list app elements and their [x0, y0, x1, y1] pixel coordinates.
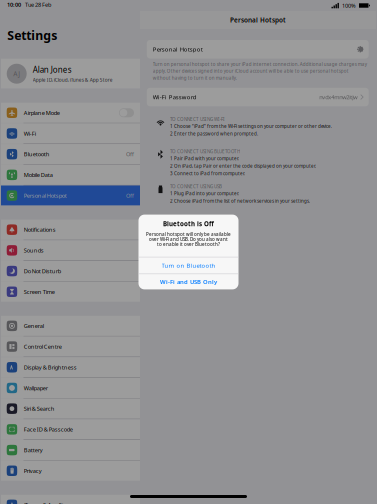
- staticText: 2 Choose iPad from the list of network s…: [170, 198, 310, 204]
- staticText: Wi-Fi: [24, 130, 36, 137]
- button[interactable]: Sounds: [1, 240, 140, 260]
- staticText: Bluetooth: [24, 150, 50, 158]
- staticText: Airplane Mode: [24, 109, 60, 117]
- button[interactable]: Wi-Fi and USB Only: [138, 274, 238, 289]
- button[interactable]: iTunes & App Store: [1, 495, 140, 504]
- staticText: to enable it over Bluetooth?: [157, 241, 220, 247]
- staticText: Mobile Data: [24, 171, 53, 179]
- staticText: Screen Time: [24, 288, 55, 296]
- staticText: Wi-Fi Password: [153, 93, 197, 101]
- staticText: Off: [126, 192, 134, 199]
- staticText: 100%: [342, 2, 356, 9]
- staticText: TO CONNECT USING BLUETOOTH: [170, 148, 240, 154]
- staticText: over Wi-Fi and USB. Do you also want: [149, 236, 228, 242]
- button[interactable]: Personal Hotspot: [1, 185, 140, 206]
- staticText: Settings: [7, 27, 57, 44]
- staticText: Wallpaper: [24, 384, 48, 392]
- button[interactable]: Mobile Data: [1, 165, 140, 185]
- button[interactable]: AJ: [1, 59, 140, 89]
- button[interactable]: Turn on Bluetooth: [138, 257, 238, 274]
- staticText: Do Not Disturb: [24, 267, 61, 275]
- staticText: 1 Choose “iPad” from the Wi-Fi settings …: [170, 123, 332, 129]
- button[interactable]: Face ID & Passcode: [1, 419, 140, 439]
- button[interactable]: Notifications: [1, 220, 140, 240]
- staticText: Privacy: [24, 467, 42, 475]
- button[interactable]: Screen Time: [1, 282, 140, 302]
- staticText: Personal Hotspot: [153, 45, 203, 53]
- button[interactable]: Airplane Mode: [1, 103, 140, 123]
- button[interactable]: Wallpaper: [1, 378, 140, 398]
- staticText: nvdx4mnw2itjw: [319, 93, 357, 101]
- staticText: apply. Other devices signed into your iC…: [153, 68, 349, 74]
- staticText: Tue 28 Feb: [25, 1, 51, 8]
- button[interactable]: Bluetooth: [1, 144, 140, 164]
- button[interactable]: Display & Brightness: [1, 357, 140, 377]
- button[interactable]: Battery: [1, 440, 140, 460]
- staticText: General: [24, 322, 44, 330]
- staticText: Face ID & Passcode: [24, 425, 73, 433]
- staticText: 10:00: [7, 1, 21, 8]
- staticText: Alan Jones: [33, 64, 72, 75]
- staticText: 1 Plug iPad into your computer.: [170, 190, 239, 197]
- staticText: Sounds: [24, 246, 44, 254]
- staticText: Control Centre: [24, 343, 62, 350]
- staticText: TO CONNECT USING USB: [170, 183, 222, 190]
- staticText: Turn on Bluetooth: [161, 261, 215, 269]
- staticText: iTunes & App Store: [24, 501, 72, 504]
- button[interactable]: Wi-Fi Password: [140, 88, 376, 106]
- staticText: Turn on personal hotspot to share your i…: [153, 61, 367, 67]
- staticText: 3 Connect to iPad from computer.: [170, 170, 245, 177]
- staticText: Notifications: [24, 226, 56, 233]
- staticText: Off: [126, 150, 134, 158]
- staticText: TO CONNECT USING WI-FI: [170, 116, 225, 122]
- staticText: 2 Enter the password when prompted.: [170, 131, 258, 137]
- staticText: Display & Brightness: [24, 363, 77, 371]
- button[interactable]: Do Not Disturb: [1, 261, 140, 281]
- staticText: Personal Hotspot: [24, 192, 67, 199]
- staticText: Personal hotspot will only be available: [146, 231, 231, 237]
- staticText: Apple ID, iCloud, iTunes & App Store: [33, 77, 113, 83]
- staticText: 2 On iPad, tap Pair or enter the code di…: [170, 163, 316, 169]
- staticText: Wi-Fi and USB Only: [160, 278, 217, 286]
- staticText: without having to turn it on manually.: [153, 75, 237, 81]
- button[interactable]: Control Centre: [1, 336, 140, 357]
- button[interactable]: Wi-Fi: [1, 123, 140, 143]
- button[interactable]: Privacy: [1, 461, 140, 481]
- staticText: Personal Hotspot: [230, 16, 286, 24]
- staticText: Bluetooth is Off: [163, 220, 214, 228]
- button[interactable]: General: [1, 316, 140, 336]
- staticText: 1 Pair iPad with your computer.: [170, 155, 239, 161]
- staticText: Battery: [24, 446, 43, 454]
- button[interactable]: Siri & Search: [1, 399, 140, 419]
- staticText: Siri & Search: [24, 405, 55, 412]
- staticText: AJ: [13, 69, 20, 78]
